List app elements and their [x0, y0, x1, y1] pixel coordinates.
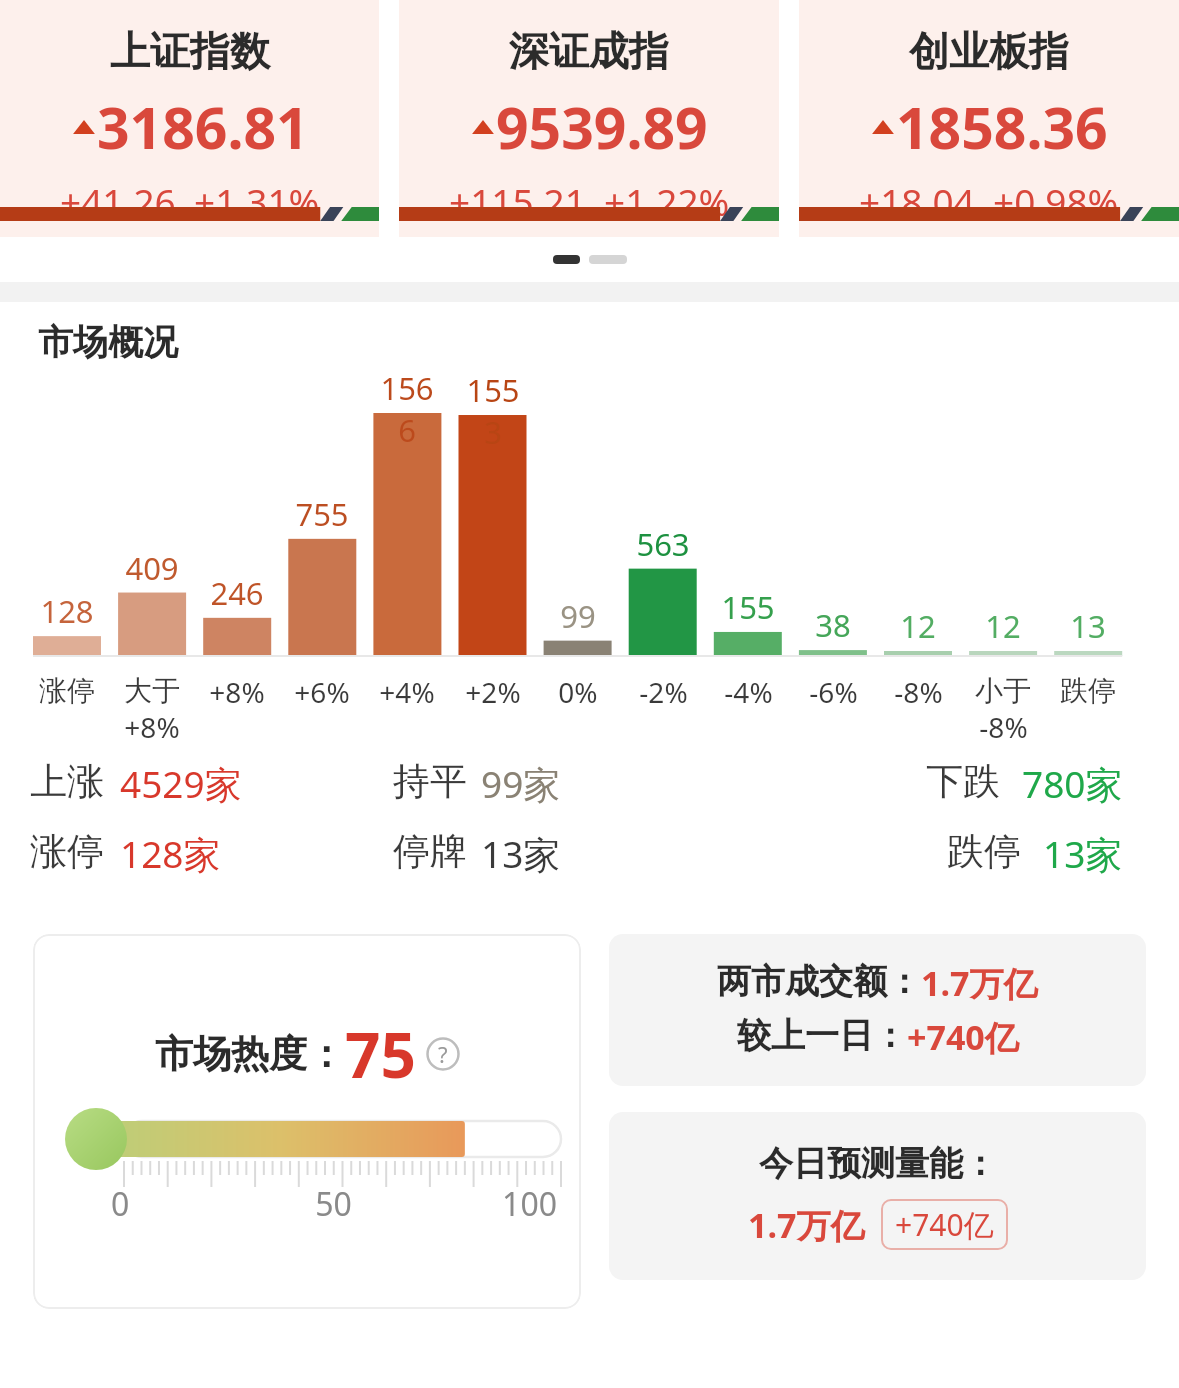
staticText: +740亿	[895, 1204, 994, 1245]
staticText: +0.98%	[993, 176, 1119, 226]
staticText: 38	[815, 604, 851, 646]
staticText: 0	[111, 1182, 259, 1226]
staticText: 1.7万亿	[921, 960, 1038, 1006]
staticText: 涨停	[30, 828, 104, 875]
staticText: 跌停	[947, 828, 1021, 875]
staticText: 1.7万亿	[748, 1202, 865, 1248]
staticText: 较上一日：	[737, 1014, 907, 1057]
staticText: 409	[125, 547, 179, 589]
staticText: 下跌	[926, 758, 1000, 805]
staticText: 246	[210, 572, 264, 614]
staticText: 9539.89	[496, 88, 708, 166]
staticText: 50	[259, 1182, 408, 1226]
staticText: 市场概况	[38, 320, 178, 364]
staticText: 4529家	[120, 758, 242, 809]
button[interactable]: 深证成指	[399, 0, 779, 237]
staticText: 涨停	[39, 673, 95, 708]
staticText: 780家	[1022, 758, 1123, 809]
staticText: 75	[345, 1012, 416, 1096]
staticText: 市场热度：	[155, 1030, 345, 1078]
button[interactable]: 创业板指	[799, 0, 1179, 237]
staticText: +2%	[465, 673, 521, 711]
staticText: +8%	[209, 673, 265, 711]
staticText: 13	[1070, 605, 1106, 647]
staticText: -8%	[894, 673, 943, 711]
button[interactable]: 两市成交额：	[609, 934, 1146, 1086]
staticText: 两市成交额：	[717, 960, 921, 1003]
staticText: -6%	[809, 673, 858, 711]
staticText: ?	[438, 1039, 448, 1069]
staticText: -2%	[639, 673, 688, 711]
staticText: 0%	[558, 673, 598, 711]
staticText: 今日预测量能：	[759, 1142, 997, 1185]
staticText: +740亿	[907, 1014, 1019, 1060]
staticText: 1858.36	[896, 88, 1108, 166]
staticText: +41.26	[60, 176, 176, 226]
staticText: -8%	[979, 708, 1028, 746]
staticText: -4%	[724, 673, 773, 711]
staticText: +1.31%	[194, 176, 320, 226]
staticText: +115.21	[449, 176, 586, 226]
button[interactable]: 上证指数	[0, 0, 379, 237]
staticText: 停牌	[393, 828, 467, 875]
staticText: 13家	[1043, 828, 1123, 879]
staticText: +4%	[379, 673, 435, 711]
staticText: 持平	[393, 758, 467, 805]
staticText: 100	[408, 1182, 557, 1226]
staticText: 跌停	[1060, 673, 1116, 708]
staticText: 12	[900, 605, 936, 647]
staticText: 12	[985, 605, 1021, 647]
staticText: 上证指数	[110, 26, 270, 76]
button[interactable]: 帮助	[426, 1037, 460, 1071]
staticText: 大于	[124, 673, 180, 708]
staticText: 3186.81	[97, 88, 309, 166]
staticText: 128家	[120, 828, 221, 879]
staticText: 1553	[459, 369, 527, 453]
staticText: 1566	[373, 367, 441, 451]
button[interactable]: 市场热度：	[33, 934, 581, 1309]
staticText: 小于	[975, 673, 1031, 708]
button[interactable]: +740亿	[895, 1204, 994, 1245]
staticText: 155	[721, 586, 775, 628]
staticText: 755	[295, 493, 349, 535]
staticText: +6%	[294, 673, 350, 711]
staticText: 13家	[481, 828, 561, 879]
staticText: +18.04	[859, 176, 975, 226]
staticText: 563	[636, 523, 690, 565]
staticText: 128	[40, 590, 94, 632]
staticText: 上涨	[30, 758, 104, 805]
staticText: 99	[560, 595, 596, 637]
staticText: +1.22%	[604, 176, 730, 226]
button[interactable]: 今日预测量能：	[609, 1112, 1146, 1280]
staticText: 创业板指	[909, 26, 1069, 76]
staticText: 深证成指	[509, 26, 669, 76]
staticText: +8%	[124, 708, 180, 746]
staticText: 99家	[481, 758, 561, 809]
